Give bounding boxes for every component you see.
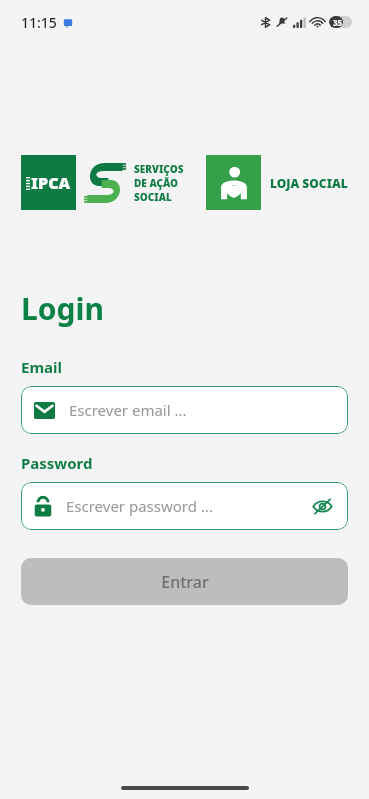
staticText: Login <box>21 288 104 329</box>
staticText: Password <box>21 453 93 473</box>
button[interactable]: Escrever password ... <box>21 482 348 530</box>
staticText: Entrar <box>161 571 209 593</box>
staticText: DE AÇÃO <box>134 176 179 190</box>
staticText: LOJA SOCIAL <box>270 175 348 191</box>
button[interactable]: Escrever email ... <box>21 386 348 434</box>
button[interactable]: Entrar <box>21 558 348 605</box>
staticText: Escrever email ... <box>69 400 187 420</box>
button[interactable]: Show password <box>309 493 335 519</box>
staticText: Email <box>21 357 62 377</box>
staticText: 35 <box>333 17 343 28</box>
staticText: 11:15 <box>21 13 57 32</box>
staticText: SERVIÇOS <box>134 162 184 176</box>
staticText: Escrever password ... <box>66 496 213 516</box>
staticText: SOCIAL <box>134 190 172 204</box>
staticText: IPCA <box>31 172 71 194</box>
